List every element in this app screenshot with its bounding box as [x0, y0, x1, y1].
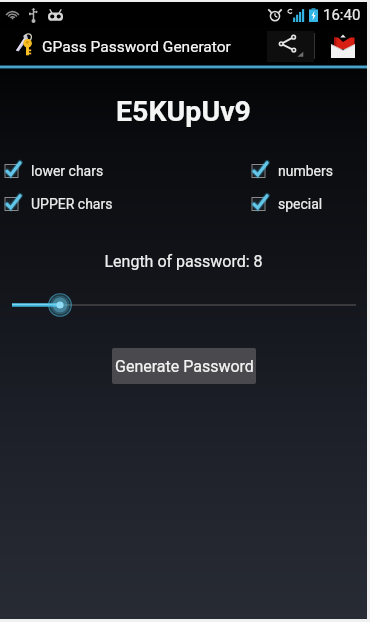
staticText: Generate Password [115, 357, 254, 376]
button[interactable]: Generate Password [112, 348, 256, 384]
button[interactable] [0, 292, 367, 318]
button[interactable]: numbers [247, 161, 367, 181]
button[interactable]: Send email [315, 27, 367, 65]
button[interactable]: GPass Password Generator [0, 34, 239, 59]
button[interactable]: lower chars [0, 161, 247, 181]
button[interactable]: UPPER chars [0, 194, 247, 214]
staticText: special [278, 196, 323, 212]
button[interactable]: special [247, 194, 367, 214]
staticText: E5KUpUv9 [0, 95, 367, 128]
staticText: GPass Password Generator [42, 38, 231, 56]
button[interactable]: Share [266, 27, 314, 65]
staticText: numbers [278, 163, 333, 179]
staticText: Length of password: 8 [0, 252, 367, 271]
staticText: 16:40 [323, 6, 361, 24]
staticText: UPPER chars [31, 196, 113, 212]
staticText: lower chars [31, 163, 104, 179]
